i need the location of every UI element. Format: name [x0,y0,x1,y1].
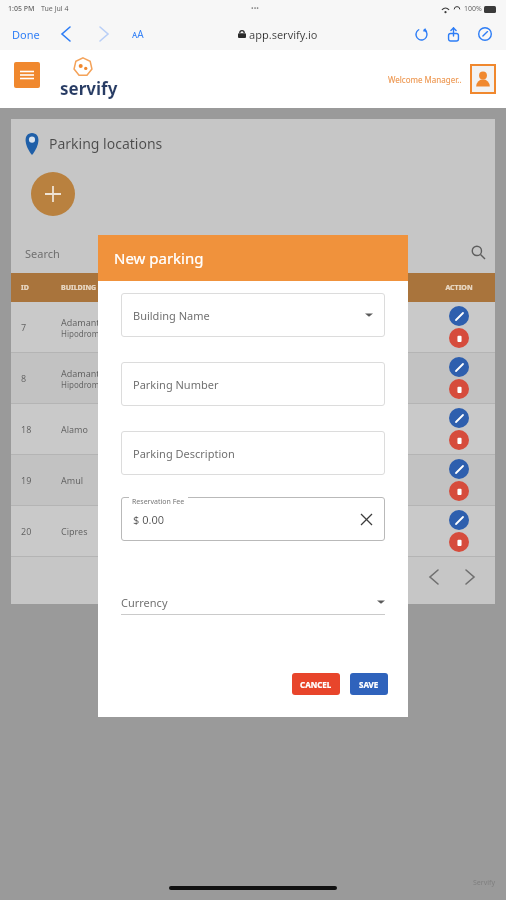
staticText: servify [60,77,118,100]
button[interactable]: Edit [449,408,469,428]
staticText: ..ENCY [383,283,433,293]
staticText: Parking Description [133,446,235,461]
button[interactable]: Clear [357,510,375,528]
button[interactable]: 18 [11,404,495,454]
button[interactable]: 20 [11,506,495,556]
button[interactable]: Delete [449,481,469,501]
staticText: 8 [21,372,61,384]
staticText: Amul [61,474,84,486]
button[interactable]: Delete [449,430,469,450]
button[interactable]: Next page [459,566,481,588]
button[interactable]: Done [10,25,42,44]
staticText: Adamant [61,316,100,328]
staticText: 20 [21,525,61,537]
button[interactable]: Edit [449,510,469,530]
button[interactable]: Edit [449,459,469,479]
button[interactable]: Edit [449,306,469,326]
button[interactable]: Menu [14,62,40,88]
staticText: Done [12,27,40,42]
button[interactable]: Tabs [474,23,496,45]
staticText: Hipodromo [61,379,104,390]
staticText: ACTION [433,283,485,293]
staticText: 7 [21,321,61,333]
staticText: Adamant [61,367,100,379]
button[interactable]: Text size [130,25,146,43]
button[interactable]: Previous page [423,566,445,588]
staticText: 19 [21,474,61,486]
button[interactable]: Share [442,23,464,45]
staticText: Cipres [61,525,88,537]
button[interactable]: Delete [449,379,469,399]
staticText: ••• [251,4,259,14]
staticText: app.servify.io [249,27,318,42]
button[interactable]: 7 [11,302,495,352]
button[interactable]: SAVE [350,673,388,695]
staticText: Building Name [133,308,210,323]
button[interactable]: Building Name [121,293,385,337]
button[interactable]: Parking Description [121,431,385,475]
button[interactable]: Edit [449,357,469,377]
staticText: ᴀA [132,27,144,41]
staticText: Reservation Fee [132,497,185,507]
button[interactable]: 8 [11,353,495,403]
button[interactable]: CANCEL [292,673,340,695]
button[interactable]: 19 [11,455,495,505]
staticText: New parking [114,248,204,268]
staticText: Parking locations [49,134,163,153]
button[interactable]: Profile [470,64,496,94]
button[interactable]: Delete [449,532,469,552]
staticText: 1:05 PM [8,4,35,14]
staticText: 18 [21,423,61,435]
staticText: Parking Number [133,377,219,392]
staticText: Alamo [61,423,88,435]
button[interactable]: Add parking [31,172,75,216]
staticText: 100% [464,4,482,14]
staticText: Hipodromo [61,328,104,339]
button[interactable]: Currency [121,589,385,615]
staticText: Welcome Manager.. [388,74,462,85]
button[interactable]: Forward [94,24,114,44]
button[interactable]: Delete [449,328,469,348]
staticText: SAVE [359,679,379,690]
staticText: CANCEL [300,679,332,690]
staticText: Search [25,246,60,261]
button[interactable]: Reload [410,23,432,45]
staticText: $ 0.00 [133,512,164,527]
staticText: Currency [121,595,168,610]
staticText: Servify [473,878,496,888]
button[interactable]: Back [56,24,76,44]
button[interactable]: Parking Number [121,362,385,406]
staticText: ID [21,283,61,293]
staticText: Tue Jul 4 [41,4,69,14]
staticText: BUILDING NA.. [61,283,181,293]
